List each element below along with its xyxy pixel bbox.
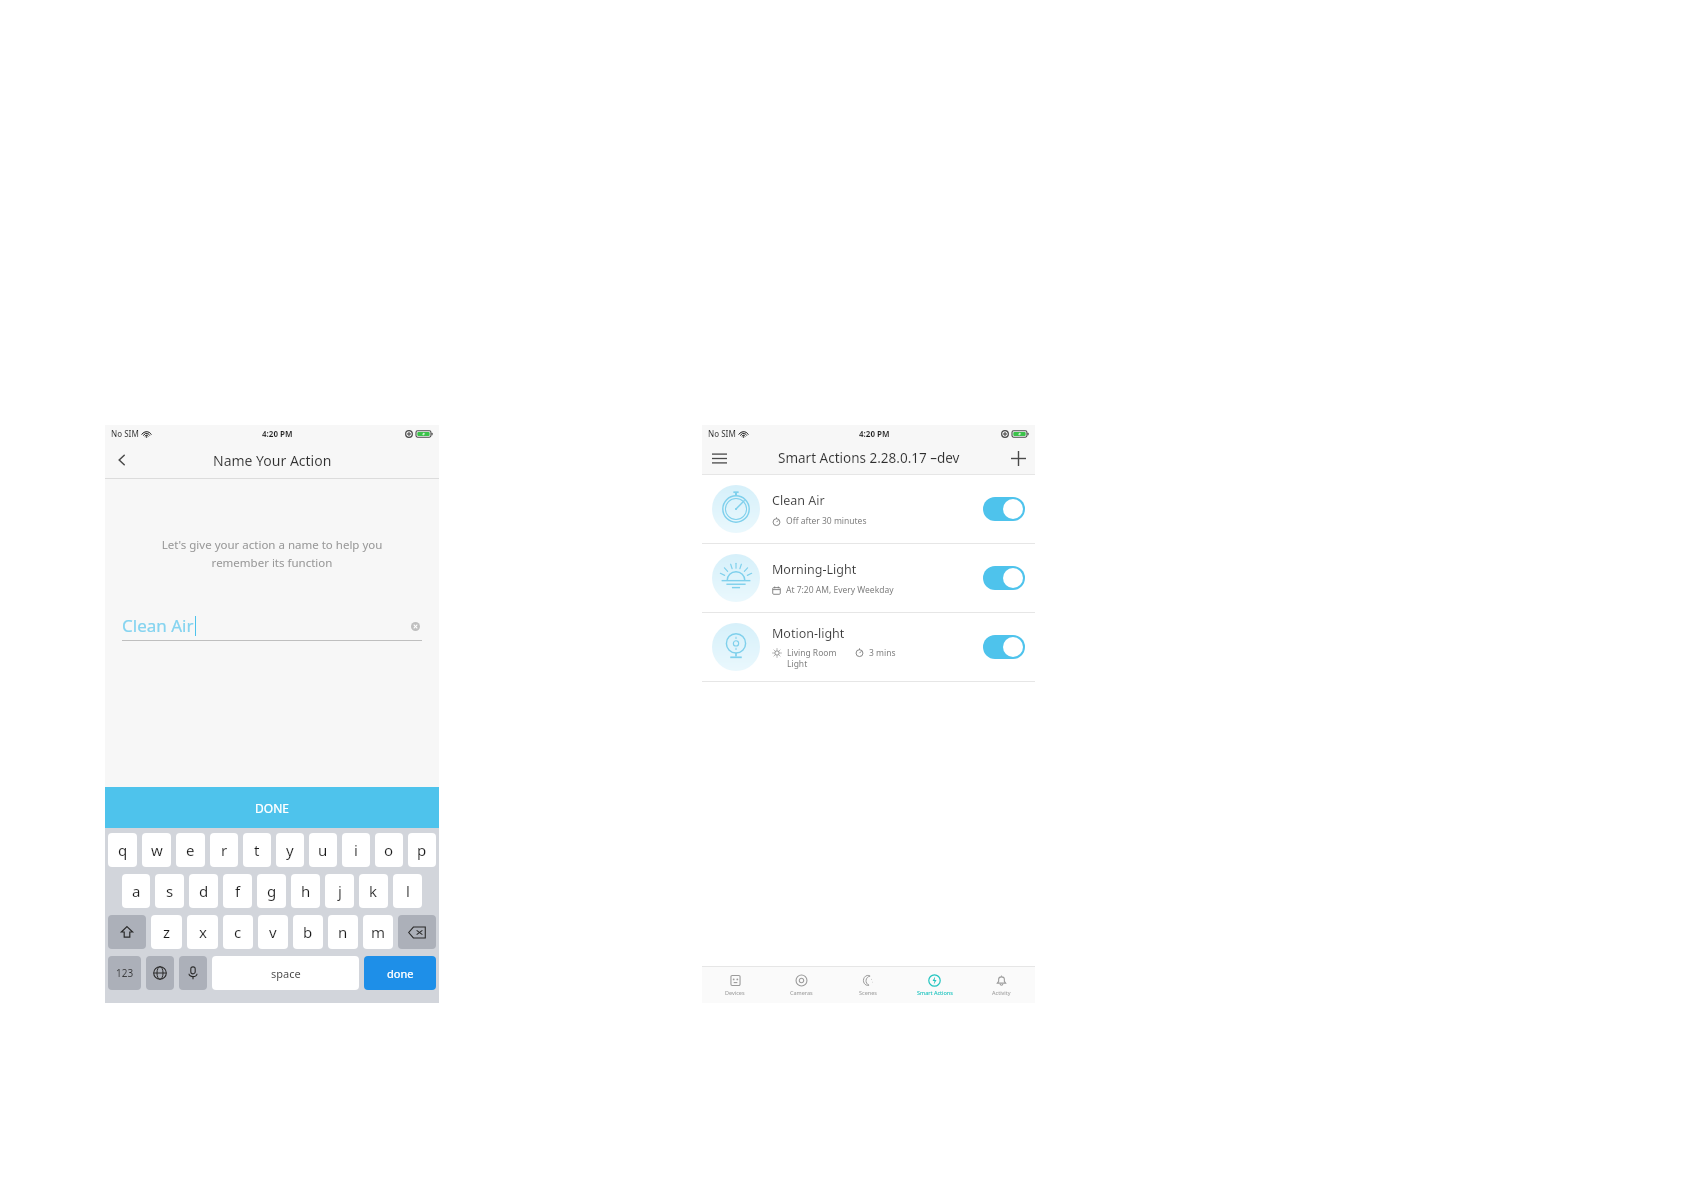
button[interactable]: Change keyboard xyxy=(146,956,174,990)
button[interactable]: w xyxy=(142,833,171,867)
button[interactable]: n xyxy=(328,915,358,949)
staticText: x xyxy=(199,922,207,942)
other: Change keyboard xyxy=(153,966,167,980)
staticText: 4:20 PM xyxy=(262,428,293,439)
button[interactable]: u xyxy=(309,833,337,867)
other: Voice input xyxy=(188,966,198,980)
button[interactable]: Voice input xyxy=(179,956,207,990)
button[interactable]: z xyxy=(151,915,182,949)
staticText: v xyxy=(269,922,277,942)
staticText: At 7:20 AM, Every Weekday xyxy=(786,584,894,596)
button[interactable]: b xyxy=(293,915,323,949)
button[interactable]: v xyxy=(258,915,288,949)
button[interactable]: Activity xyxy=(968,967,1035,1003)
button[interactable]: r xyxy=(210,833,238,867)
staticText: g xyxy=(267,881,277,901)
button[interactable]: Toggle action xyxy=(983,566,1025,590)
button[interactable]: Motion-light xyxy=(702,613,1035,681)
button[interactable]: Smart Actions xyxy=(901,967,968,1003)
staticText: h xyxy=(301,881,311,901)
staticText: 3 mins xyxy=(869,647,896,659)
staticText: 4:20 PM xyxy=(859,428,890,439)
button[interactable]: DONE xyxy=(105,787,439,828)
button[interactable]: Add action xyxy=(1001,442,1035,474)
staticText: l xyxy=(406,881,410,901)
staticText: No SIM xyxy=(708,428,736,439)
staticText: z xyxy=(163,922,171,942)
button[interactable]: l xyxy=(393,874,422,908)
button[interactable]: Backspace xyxy=(398,915,436,949)
staticText: r xyxy=(221,840,228,860)
staticText: t xyxy=(254,840,260,860)
button[interactable]: s xyxy=(155,874,184,908)
button[interactable]: o xyxy=(375,833,403,867)
button[interactable]: h xyxy=(291,874,320,908)
staticText: Name Your Action xyxy=(213,451,332,470)
button[interactable]: d xyxy=(189,874,218,908)
staticText: m xyxy=(371,922,386,942)
staticText: i xyxy=(354,840,358,860)
button[interactable]: Menu xyxy=(702,442,736,474)
staticText: u xyxy=(318,840,328,860)
staticText: Clean Air xyxy=(772,492,825,509)
button[interactable]: Morning-Light xyxy=(702,544,1035,612)
staticText: Devices xyxy=(725,989,745,996)
staticText: d xyxy=(199,881,209,901)
staticText: y xyxy=(286,840,294,860)
button[interactable]: Cameras xyxy=(768,967,834,1003)
button[interactable]: p xyxy=(408,833,436,867)
button[interactable]: space xyxy=(212,956,359,990)
staticText: Smart Actions 2.28.0.17 –dev xyxy=(778,449,960,467)
button[interactable]: Shift xyxy=(108,915,146,949)
staticText: q xyxy=(118,840,128,860)
button[interactable]: Clear text xyxy=(408,619,422,633)
button[interactable]: Devices xyxy=(702,967,768,1003)
staticText: space xyxy=(271,966,301,981)
other: Shift xyxy=(120,925,134,939)
staticText: Morning-Light xyxy=(772,561,857,578)
staticText: Let's give your action a name to help yo… xyxy=(125,537,419,570)
staticText: Activity xyxy=(992,989,1011,996)
button[interactable]: Toggle action xyxy=(983,635,1025,659)
staticText: j xyxy=(338,881,342,901)
staticText: f xyxy=(235,881,241,901)
button[interactable]: done xyxy=(364,956,436,990)
staticText: p xyxy=(417,840,427,860)
staticText: Scenes xyxy=(859,989,877,996)
button[interactable]: c xyxy=(223,915,253,949)
staticText: Smart Actions xyxy=(917,989,953,996)
staticText: Motion-light xyxy=(772,625,845,642)
staticText: 123 xyxy=(116,966,134,980)
other: Backspace xyxy=(408,926,426,939)
staticText: n xyxy=(338,922,348,942)
staticText: e xyxy=(186,840,195,860)
button[interactable]: 123 xyxy=(108,956,141,990)
staticText: Clean Air xyxy=(122,614,194,637)
staticText: c xyxy=(234,922,242,942)
button[interactable]: Scenes xyxy=(834,967,901,1003)
button[interactable]: j xyxy=(325,874,354,908)
staticText: o xyxy=(384,840,394,860)
button[interactable]: x xyxy=(187,915,218,949)
button[interactable]: y xyxy=(276,833,304,867)
button[interactable]: Back xyxy=(105,442,139,478)
button[interactable]: Toggle action xyxy=(983,497,1025,521)
staticText: k xyxy=(369,881,378,901)
staticText: w xyxy=(151,840,163,860)
button[interactable]: i xyxy=(342,833,370,867)
button[interactable]: Clean Air xyxy=(702,475,1035,543)
button[interactable]: t xyxy=(243,833,271,867)
button[interactable]: a xyxy=(122,874,150,908)
button[interactable]: e xyxy=(176,833,205,867)
button[interactable]: f xyxy=(223,874,252,908)
button[interactable]: k xyxy=(359,874,388,908)
button[interactable]: q xyxy=(108,833,137,867)
button[interactable]: m xyxy=(363,915,393,949)
staticText: s xyxy=(166,881,174,901)
staticText: done xyxy=(387,966,414,981)
staticText: a xyxy=(132,881,141,901)
staticText: Living Room Light xyxy=(787,647,843,669)
staticText: Cameras xyxy=(790,989,813,996)
button[interactable]: g xyxy=(257,874,286,908)
staticText: No SIM xyxy=(111,428,139,439)
